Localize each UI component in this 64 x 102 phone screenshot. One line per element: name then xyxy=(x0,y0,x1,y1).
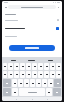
button[interactable]: Key xyxy=(30,79,35,87)
button[interactable]: Key xyxy=(46,88,52,96)
button[interactable]: Key xyxy=(42,79,47,87)
button[interactable] xyxy=(41,58,60,62)
button[interactable]: Key xyxy=(14,63,19,70)
button[interactable]: Home xyxy=(31,98,34,101)
button[interactable]: Space xyxy=(19,88,45,96)
button[interactable]: Key xyxy=(26,63,31,70)
button[interactable]: Key xyxy=(3,71,7,78)
button[interactable]: Key xyxy=(3,88,11,96)
button[interactable]: Key xyxy=(36,79,41,87)
button[interactable]: Key xyxy=(48,79,53,87)
button[interactable]: Key xyxy=(44,71,49,78)
button[interactable]: Toggle option xyxy=(56,27,59,30)
button[interactable]: Toggle option xyxy=(5,26,59,31)
button[interactable]: Key xyxy=(14,71,19,78)
button[interactable]: Recents xyxy=(46,98,49,101)
button[interactable]: Key xyxy=(20,71,25,78)
button[interactable]: Key xyxy=(8,63,13,70)
button[interactable]: Key xyxy=(32,71,37,78)
button[interactable]: Key xyxy=(56,71,61,78)
button[interactable]: More options xyxy=(57,6,60,9)
button[interactable]: Key xyxy=(44,63,49,70)
button[interactable]: Key xyxy=(18,79,23,87)
button[interactable]: Key xyxy=(53,88,61,96)
button[interactable] xyxy=(22,58,41,62)
button[interactable]: Key xyxy=(50,71,55,78)
button[interactable]: Key xyxy=(50,63,55,70)
button[interactable]: Key xyxy=(3,79,11,87)
button[interactable]: Key xyxy=(20,63,25,70)
button[interactable]: Key xyxy=(32,63,37,70)
button[interactable] xyxy=(9,45,55,51)
button[interactable]: Back xyxy=(4,6,7,9)
button[interactable]: Key xyxy=(12,79,17,87)
button[interactable]: Back xyxy=(15,98,18,101)
button[interactable]: Key xyxy=(8,71,13,78)
button[interactable]: Key xyxy=(26,71,31,78)
button[interactable]: Key xyxy=(24,79,29,87)
button[interactable] xyxy=(4,58,22,62)
button[interactable] xyxy=(8,5,56,9)
button[interactable]: Key xyxy=(38,71,43,78)
button[interactable] xyxy=(5,18,59,22)
button[interactable]: Key xyxy=(12,88,18,96)
button[interactable]: Key xyxy=(56,63,61,70)
button[interactable]: Key xyxy=(38,63,43,70)
button[interactable] xyxy=(5,34,59,38)
button[interactable]: Key xyxy=(3,63,7,70)
button[interactable]: Key xyxy=(54,79,61,87)
